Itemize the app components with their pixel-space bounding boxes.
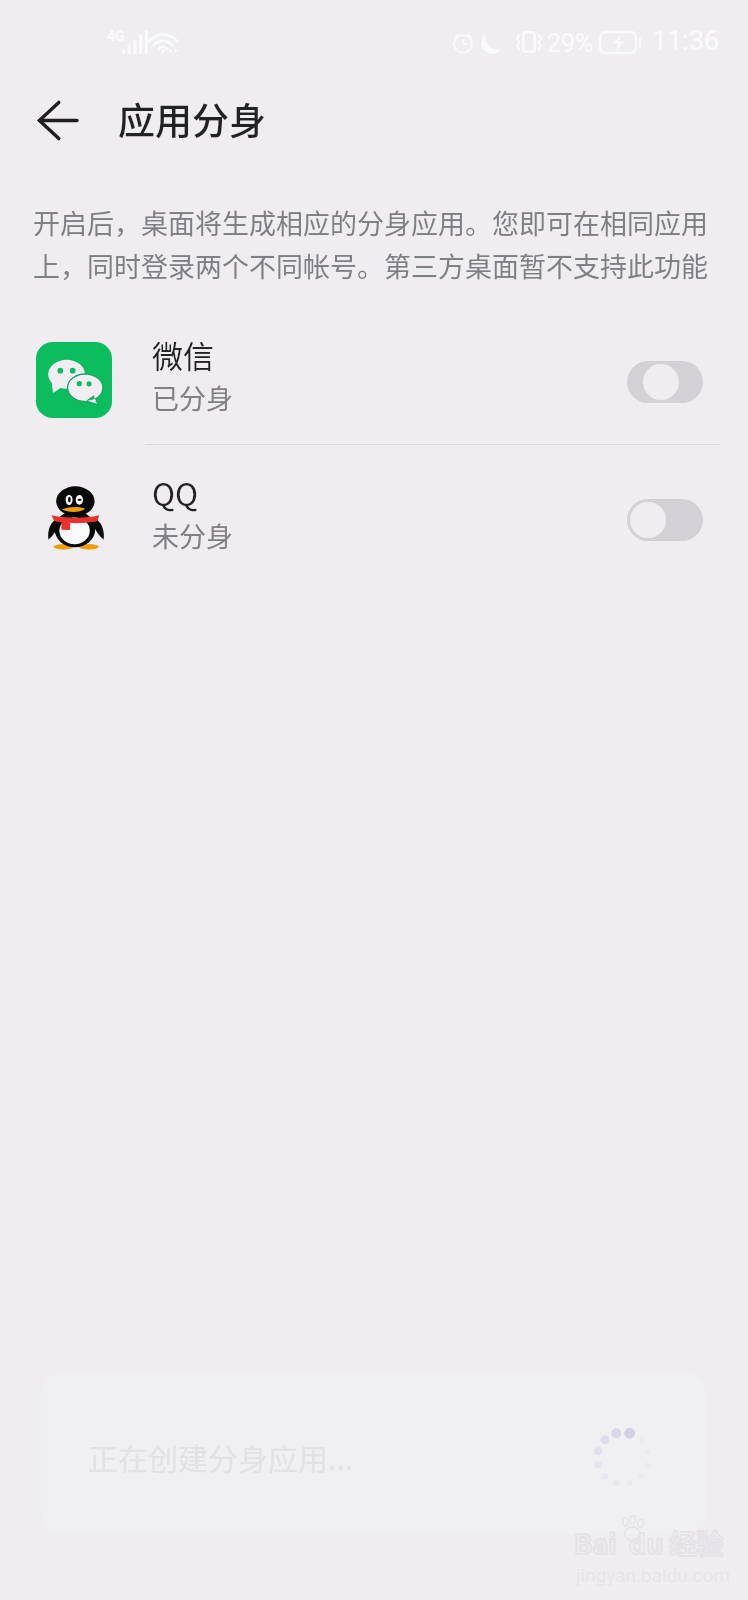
button[interactable]: Toggle app twin — [627, 499, 703, 541]
staticText: 29% — [547, 27, 594, 59]
staticText: 未分身 — [152, 521, 233, 553]
staticText: Bai du 经验 — [574, 1527, 724, 1561]
staticText: 11:36 — [652, 25, 720, 57]
button[interactable]: QQ — [0, 469, 748, 607]
staticText: 开启后，桌面将生成相应的分身应用。您即可在相同应用上，同时登录两个不同帐号。第三… — [33, 200, 723, 286]
staticText: 微信 — [152, 339, 214, 375]
staticText: 正在创建分身应用... — [88, 1443, 354, 1477]
staticText: 应用分身 — [118, 103, 266, 143]
staticText: QQ — [152, 477, 199, 513]
staticText: 4G — [107, 28, 125, 44]
button[interactable]: Back — [14, 77, 100, 163]
button[interactable]: Toggle app twin — [627, 361, 703, 403]
button[interactable]: 微信 — [0, 331, 748, 469]
staticText: 已分身 — [152, 383, 233, 415]
